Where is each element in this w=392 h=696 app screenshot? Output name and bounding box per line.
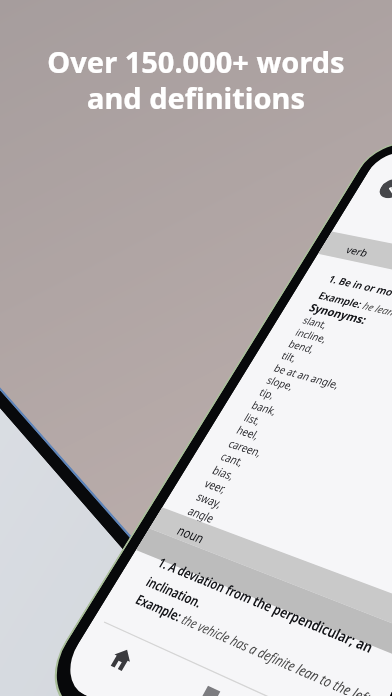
staticText: verb (344, 243, 372, 259)
staticText: bank, (249, 398, 281, 418)
button[interactable]: Bookmarks (151, 657, 267, 696)
staticText: heel, (234, 422, 262, 442)
staticText: tilt, (279, 348, 300, 365)
staticText: veer, (202, 475, 230, 496)
staticText: 1. Be in or move into a sloping position (326, 272, 392, 328)
staticText: tip, (257, 385, 278, 402)
staticText: slope, (264, 373, 297, 393)
staticText: he leaned back in his chair (360, 299, 392, 338)
staticText: noun (174, 521, 209, 547)
staticText: Synonyms: (306, 300, 370, 328)
staticText: incline, (293, 325, 330, 345)
button[interactable]: Back (375, 178, 392, 200)
staticText: Over 150.000+ words and definitions (47, 42, 345, 118)
staticText: Example: (132, 590, 188, 627)
button[interactable]: Home (68, 619, 176, 696)
staticText: cant, (218, 448, 248, 469)
staticText: 1. A deviation from the perpendicular; a… (143, 554, 377, 679)
staticText: bias, (210, 462, 238, 483)
staticText: sway, (194, 488, 226, 511)
staticText: the vehicle has a definite lean to the l… (178, 610, 375, 696)
staticText: be at an angle, (271, 361, 343, 392)
staticText: slant, (300, 313, 330, 331)
staticText: Example: (316, 289, 367, 312)
staticText: careen, (226, 436, 265, 460)
staticText: list, (241, 410, 264, 428)
staticText: bend, (286, 337, 318, 356)
staticText: angle (185, 503, 218, 526)
